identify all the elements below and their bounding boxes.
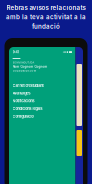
staticText: Configuració (12, 114, 33, 119)
button[interactable]: Configuració (12, 114, 33, 119)
staticText: Notificacions (12, 99, 34, 103)
staticText: amb la teva activitat a la (6, 13, 86, 21)
staticText: Nom Cognom Cognom (12, 65, 47, 68)
button[interactable]: Carnet d'estudiant (12, 83, 43, 88)
staticText: Sòcia des de 2019 (12, 69, 36, 72)
staticText: fundació (32, 23, 60, 30)
staticText: Condicions legals (12, 106, 42, 111)
button[interactable]: Notificacions (12, 99, 34, 103)
staticText: Avantatges (12, 91, 30, 95)
staticText: 9:41 (12, 50, 18, 54)
button[interactable]: Condicions legals (12, 106, 42, 111)
button[interactable]: Avantatges (12, 91, 30, 95)
staticText: Carnet d'estudiant (12, 83, 43, 88)
staticText: BENVINGUT/DA (12, 61, 34, 64)
staticText: Rebràs avisos relacionats (6, 4, 85, 11)
